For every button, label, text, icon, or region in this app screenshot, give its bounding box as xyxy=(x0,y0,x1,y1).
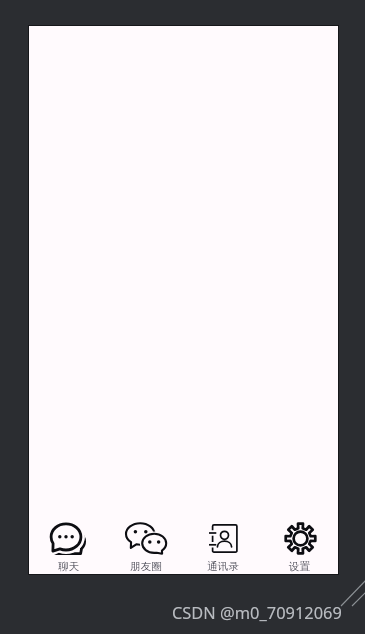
other: 设置 xyxy=(284,522,317,555)
button[interactable]: 设置 xyxy=(261,521,338,573)
staticText: 通讯录 xyxy=(207,560,239,573)
button[interactable]: 通讯录 xyxy=(184,521,261,573)
staticText: 朋友圈 xyxy=(130,560,162,573)
other: 朋友圈 xyxy=(125,522,167,555)
button[interactable]: 聊天 xyxy=(29,521,107,573)
button[interactable]: 朋友圈 xyxy=(107,521,184,573)
other: 聊天 xyxy=(49,522,87,555)
other: 通讯录 xyxy=(209,524,238,553)
staticText: CSDN @m0_70912069 xyxy=(172,601,342,623)
staticText: 设置 xyxy=(289,560,310,573)
staticText: 聊天 xyxy=(58,560,79,573)
